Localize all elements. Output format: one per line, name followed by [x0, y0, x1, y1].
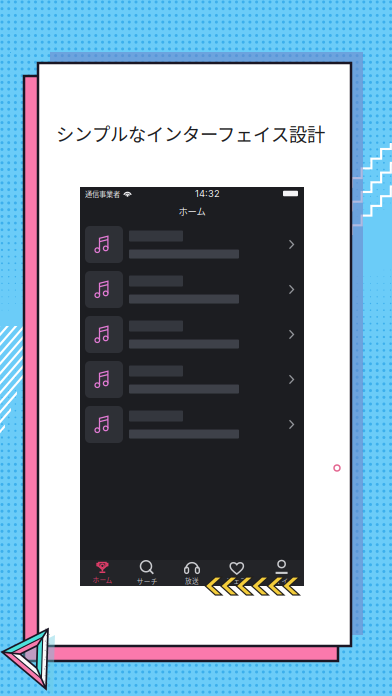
staticText: フェブ	[226, 576, 247, 585]
staticText: シンプルなインターフェイス設計	[56, 120, 325, 146]
button[interactable]	[80, 357, 304, 402]
staticText: 14:32	[195, 188, 220, 199]
button[interactable]: ホーム	[80, 560, 125, 586]
button[interactable]	[80, 402, 304, 447]
staticText: 放送	[185, 576, 199, 585]
staticText: サーチ	[137, 576, 158, 586]
button[interactable]	[80, 222, 304, 267]
button[interactable]: マイ	[259, 560, 304, 586]
staticText: ホーム	[92, 575, 112, 584]
staticText: マイ	[275, 576, 289, 585]
button[interactable]: 放送	[170, 560, 214, 586]
staticText: 通信事業者	[85, 188, 120, 199]
button[interactable]: フェブ	[214, 560, 259, 586]
button[interactable]	[80, 312, 304, 357]
button[interactable]	[80, 267, 304, 312]
staticText: ホーム	[178, 204, 205, 218]
button[interactable]: サーチ	[125, 560, 170, 586]
